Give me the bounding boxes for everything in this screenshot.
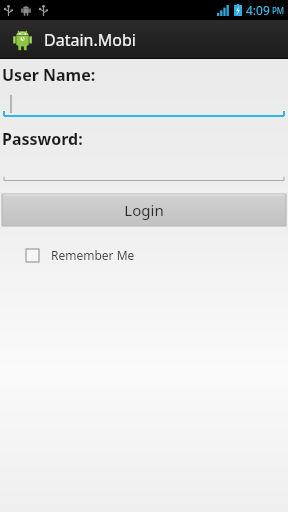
- staticText: Remember Me: [51, 247, 135, 263]
- button[interactable]: Login: [2, 194, 286, 226]
- staticText: Password:: [2, 128, 83, 150]
- staticText: PM: [272, 5, 285, 16]
- staticText: Login: [124, 200, 164, 220]
- button[interactable]: [0, 154, 288, 182]
- staticText: User Name:: [2, 64, 96, 86]
- button[interactable]: Remember Me: [26, 245, 135, 265]
- staticText: 4:09: [246, 2, 270, 18]
- button[interactable]: [0, 90, 288, 118]
- staticText: Datain.Mobi: [44, 29, 136, 51]
